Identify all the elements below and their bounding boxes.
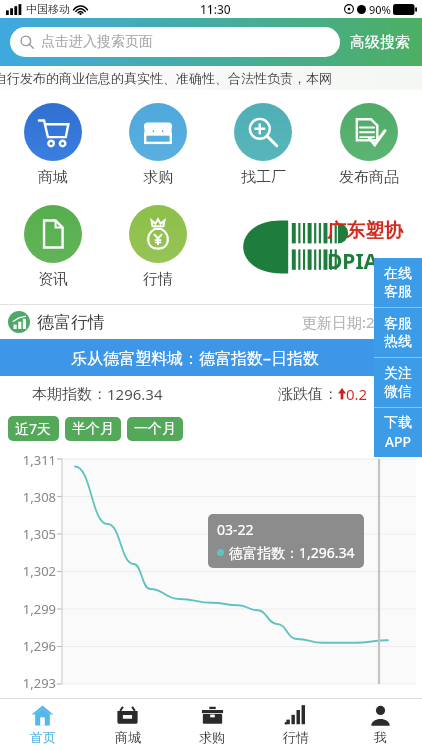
button[interactable]: 行情 [254,699,338,750]
staticText: 发布商品 [339,168,399,187]
staticText: 近7天 [15,419,52,438]
staticText: APP [385,432,411,451]
staticText: 90% [369,2,391,17]
staticText: 求购 [199,729,225,745]
staticText: 自行发布的商业信息的真实性、准确性、合法性负责，本网 [0,70,332,86]
staticText: 半个月 [72,420,114,438]
staticText: 1296.34 [107,384,163,404]
staticText: 1,293 [22,674,56,692]
staticText: 求购 [143,168,173,187]
button[interactable]: 找工厂 [210,96,316,194]
staticText: 本期指数： [32,385,107,404]
staticText: 涨跌值： [278,385,338,404]
staticText: 我 [374,729,387,745]
staticText: 下载 [384,414,412,432]
staticText: 在线 [384,265,412,283]
staticText: 客服 [384,283,412,301]
staticText: 1,299 [22,600,56,618]
staticText: 乐从德富塑料城：德富指数–日指数 [71,347,320,369]
button[interactable]: 客服 [374,308,422,357]
button[interactable]: 下载 [374,408,422,457]
staticText: 首页 [30,729,56,745]
button[interactable]: 商城 [85,699,170,750]
staticText: 1,302 [22,562,56,580]
staticText: 资讯 [38,270,68,289]
staticText: 高级搜索 [350,33,410,52]
button[interactable]: 点击进入搜索页面 [10,27,340,57]
staticText: 德富指数：1,296.34 [229,543,355,562]
button[interactable]: 近7天 [8,416,59,441]
staticText: 1,296 [22,637,56,655]
button[interactable]: 资讯 [0,198,105,296]
button[interactable]: 我 [338,699,422,750]
staticText: 德富行情 [37,312,105,333]
staticText: 中国移动 [26,2,70,16]
button[interactable]: 一个月 [127,417,183,441]
button[interactable]: 自行发布的商业信息的真实性、准确性、合法性负责，本网 [0,66,422,90]
staticText: 找工厂 [241,168,286,187]
button[interactable]: 半个月 [65,417,121,441]
staticText: 0.2 [346,384,368,404]
staticText: 11:30 [200,1,231,17]
button[interactable]: 发布商品 [316,96,422,194]
staticText: 商城 [38,168,68,187]
button[interactable]: 高级搜索 [348,29,412,56]
staticText: 客服 [384,315,412,333]
staticText: DPIA [327,247,379,276]
staticText: 行情 [283,729,309,745]
staticText: 更新日期:2022-0 [302,312,414,332]
staticText: 点击进入搜索页面 [41,33,153,51]
button[interactable]: 广东塑协 [227,217,407,277]
staticText: 热线 [384,333,412,351]
staticText: 1,311 [22,451,56,469]
staticText: 微信 [384,383,412,401]
button[interactable]: 首页 [0,699,85,750]
button[interactable]: 关注 [374,358,422,407]
staticText: 关注 [384,365,412,383]
staticText: 行情 [143,270,173,289]
staticText: 1,305 [22,525,56,543]
button[interactable]: 商城 [0,96,105,194]
button[interactable]: 求购 [170,699,254,750]
button[interactable]: 行情 [105,198,211,296]
staticText: 1,308 [22,488,56,506]
button[interactable]: 在线 [374,258,422,307]
button[interactable]: 乐从德富塑料城：德富指数–日指数 [0,339,422,376]
staticText: 广东塑协 [327,219,403,243]
staticText: 03-22 [217,520,254,539]
button[interactable]: 求购 [105,96,210,194]
staticText: 商城 [115,729,141,745]
staticText: 一个月 [134,420,176,438]
